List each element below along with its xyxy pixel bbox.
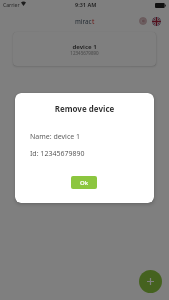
staticText: t xyxy=(92,17,95,25)
button[interactable]: English language xyxy=(152,17,161,26)
button[interactable]: device 1 xyxy=(13,32,156,66)
staticText: Name: device 1 xyxy=(30,132,81,142)
staticText: Id: 12345679890 xyxy=(30,149,85,159)
staticText: 12345679890 xyxy=(13,50,156,56)
staticText: 9:31 AM xyxy=(75,1,97,8)
button[interactable]: Add device xyxy=(139,270,162,293)
staticText: Carrier xyxy=(3,2,20,9)
button[interactable]: Turkish language xyxy=(139,17,147,25)
staticText: device 1 xyxy=(13,43,156,51)
staticText: Remove device xyxy=(15,103,154,114)
staticText: Ok xyxy=(80,179,89,187)
staticText: mirac xyxy=(75,17,92,25)
button[interactable]: Ok xyxy=(71,176,97,189)
